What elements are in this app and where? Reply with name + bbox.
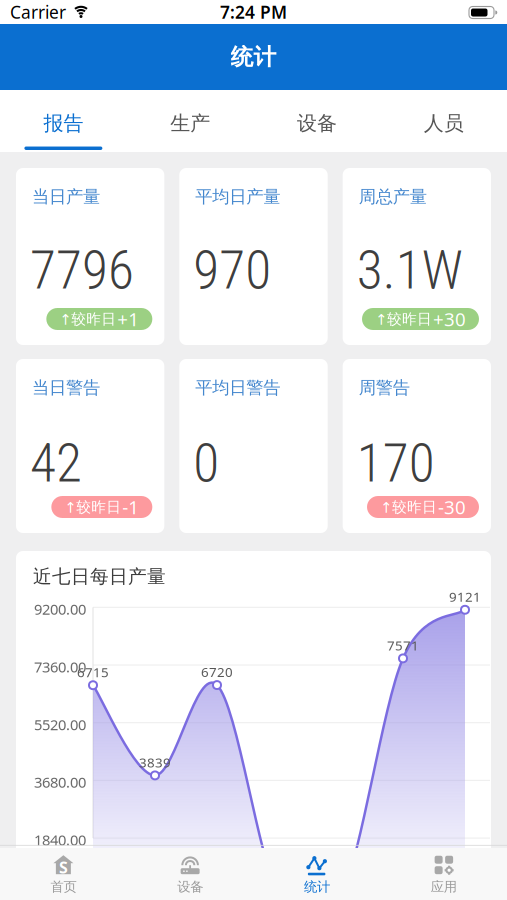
staticText: +30	[433, 307, 466, 331]
staticText: 平均日产量	[195, 186, 280, 207]
staticText: 7:24 PM	[220, 0, 287, 23]
staticText: 人员	[424, 111, 464, 136]
staticText: 0	[193, 432, 219, 494]
staticText: 生产	[170, 111, 210, 136]
staticText: 3680.00	[34, 772, 86, 792]
staticText: 当日警告	[32, 377, 100, 398]
staticText: 6720	[201, 663, 233, 681]
staticText: 42	[30, 432, 82, 494]
staticText: 报告	[43, 111, 83, 136]
staticText: 9200.00	[34, 599, 86, 619]
button[interactable]: 生产	[127, 90, 254, 152]
staticText: 设备	[177, 879, 203, 895]
staticText: 应用	[431, 879, 457, 895]
staticText: 170	[357, 432, 435, 494]
staticText: 7796	[30, 239, 134, 301]
button[interactable]: S	[0, 846, 127, 895]
staticText: +1	[117, 307, 139, 331]
staticText: ↑较昨日	[375, 310, 432, 328]
staticText: 3.1W	[357, 239, 463, 301]
button[interactable]: 应用	[380, 846, 507, 895]
staticText: 近七日每日产量	[33, 565, 166, 588]
staticText: 970	[193, 239, 271, 301]
staticText: 3839	[139, 753, 171, 771]
button[interactable]: 设备	[253, 90, 380, 152]
staticText: 平均日警告	[195, 377, 280, 398]
staticText: 7571	[387, 636, 419, 654]
staticText: 7360.00	[34, 657, 86, 676]
staticText: ↑较昨日	[59, 310, 116, 328]
staticText: 周警告	[359, 377, 410, 398]
staticText: 设备	[297, 111, 337, 136]
staticText: S	[59, 857, 68, 878]
staticText: 1840.00	[34, 830, 86, 850]
button[interactable]: 人员	[380, 90, 507, 152]
button[interactable]: 报告	[0, 90, 127, 152]
staticText: 首页	[50, 879, 76, 895]
staticText: -1	[122, 495, 139, 519]
staticText: 6715	[77, 663, 109, 681]
staticText: 统计	[230, 43, 276, 71]
staticText: 9121	[449, 588, 481, 605]
staticText: 统计	[304, 879, 330, 895]
staticText: Carrier	[10, 0, 66, 23]
staticText: ↑较昨日	[380, 498, 437, 516]
staticText: 5520.00	[34, 715, 86, 734]
button[interactable]: 统计	[253, 846, 380, 895]
staticText: 当日产量	[32, 186, 100, 207]
staticText: -30	[438, 495, 466, 519]
staticText: 周总产量	[359, 186, 427, 207]
staticText: ↑较昨日	[64, 498, 121, 516]
button[interactable]: 设备	[127, 846, 254, 895]
